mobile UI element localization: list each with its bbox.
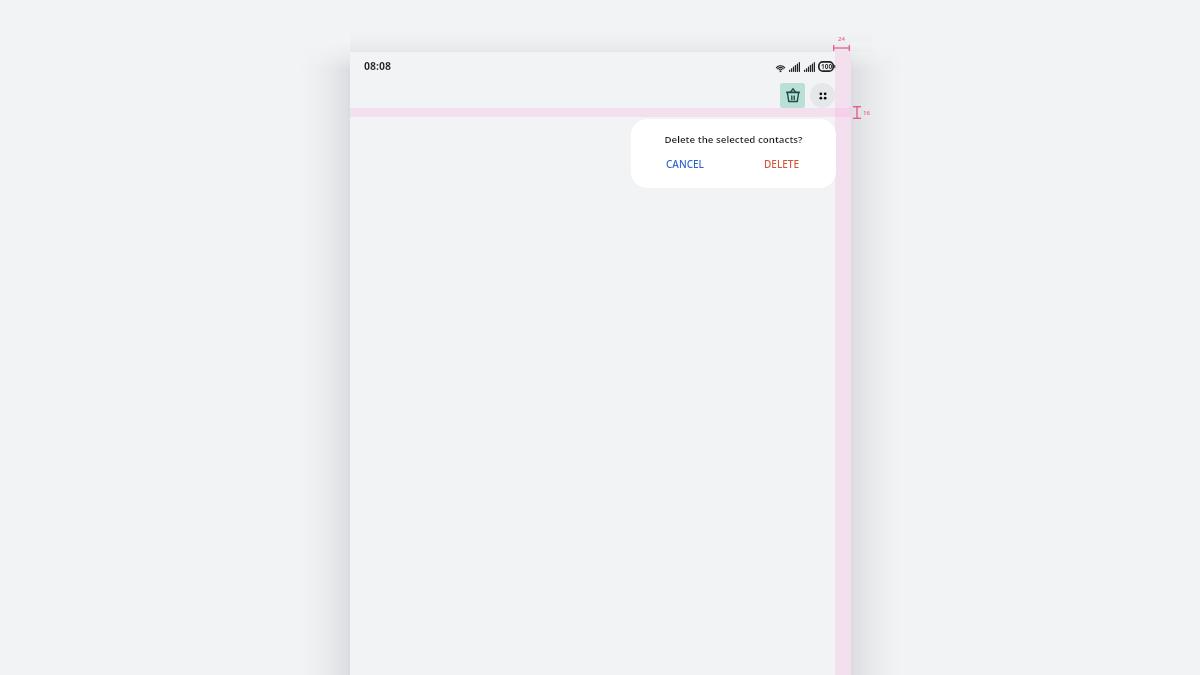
staticText: 24 [838,35,845,43]
button[interactable]: DELETE [760,153,803,175]
button[interactable]: More options [810,83,835,108]
staticText: DELETE [764,157,799,171]
button[interactable]: Delete [780,83,805,108]
button[interactable]: CANCEL [662,153,708,175]
staticText: 16 [863,109,870,117]
staticText: 08:08 [364,59,391,73]
staticText: CANCEL [666,157,704,171]
staticText: 100 [821,62,833,71]
staticText: Delete the selected contacts? [631,133,836,146]
